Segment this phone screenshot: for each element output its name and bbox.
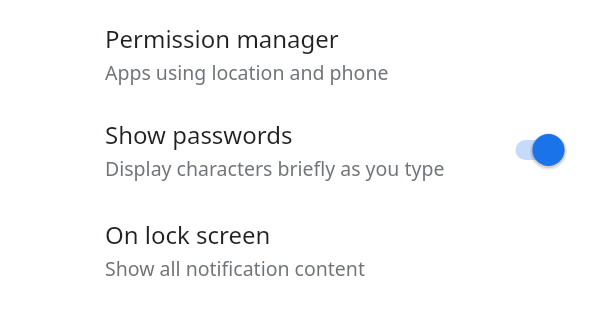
staticText: Apps using location and phone — [105, 59, 389, 86]
staticText: Display characters briefly as you type — [105, 155, 445, 182]
staticText: On lock screen — [105, 218, 271, 251]
button[interactable]: On lock screen — [0, 200, 600, 300]
staticText: Permission manager — [105, 22, 339, 55]
button[interactable]: Show passwords — [0, 100, 600, 200]
button[interactable]: Permission manager — [0, 7, 600, 100]
staticText: Show passwords — [105, 118, 293, 151]
button[interactable]: Show passwords toggle — [504, 126, 576, 174]
staticText: Show all notification content — [105, 255, 365, 282]
